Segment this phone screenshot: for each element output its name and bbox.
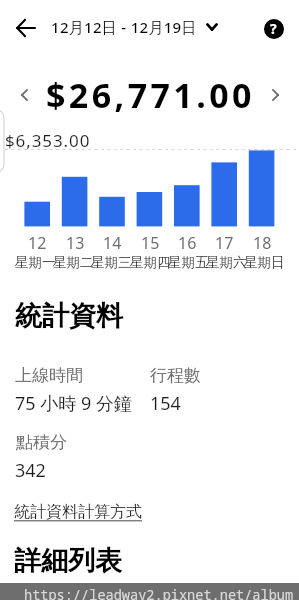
staticText: 12 <box>28 232 47 254</box>
staticText: 星期一 <box>15 254 56 271</box>
button[interactable]: Help <box>258 13 289 44</box>
staticText: 星期六 <box>206 254 247 271</box>
staticText: 上線時間 <box>15 365 83 386</box>
staticText: 14 <box>103 232 122 254</box>
staticText: 154 <box>150 391 181 416</box>
button[interactable]: Next week <box>264 84 286 106</box>
staticText: 16 <box>178 232 197 254</box>
staticText: 17 <box>215 232 234 254</box>
staticText: https://leadway2.pixnet.net/album <box>24 585 294 600</box>
staticText: 星期四 <box>130 254 171 271</box>
button[interactable]: Back <box>6 9 44 47</box>
staticText: 星期三 <box>91 254 132 271</box>
button[interactable]: 12月12日 - 12月19日 <box>51 17 218 37</box>
staticText: 星期二 <box>53 254 94 271</box>
staticText: 13 <box>66 232 85 254</box>
staticText: 星期五 <box>168 254 209 271</box>
staticText: $6,353.00 <box>5 129 91 152</box>
staticText: 18 <box>253 232 272 254</box>
staticText: 星期日 <box>244 254 285 271</box>
staticText: 342 <box>15 458 46 483</box>
staticText: ? <box>270 19 277 38</box>
staticText: 統計資料 <box>15 299 123 333</box>
staticText: 點積分 <box>16 432 67 453</box>
staticText: 行程數 <box>150 365 201 386</box>
staticText: 75 小時 9 分鐘 <box>15 391 132 416</box>
staticText: 15 <box>141 232 160 254</box>
staticText: $26,771.00 <box>46 72 255 118</box>
staticText: 詳細列表 <box>14 544 122 578</box>
button[interactable]: Previous week <box>13 84 35 106</box>
staticText: 12月12日 - 12月19日 <box>51 17 197 37</box>
staticText: 統計資料計算方式 <box>14 502 142 522</box>
button[interactable]: 統計資料計算方式 <box>14 502 142 522</box>
